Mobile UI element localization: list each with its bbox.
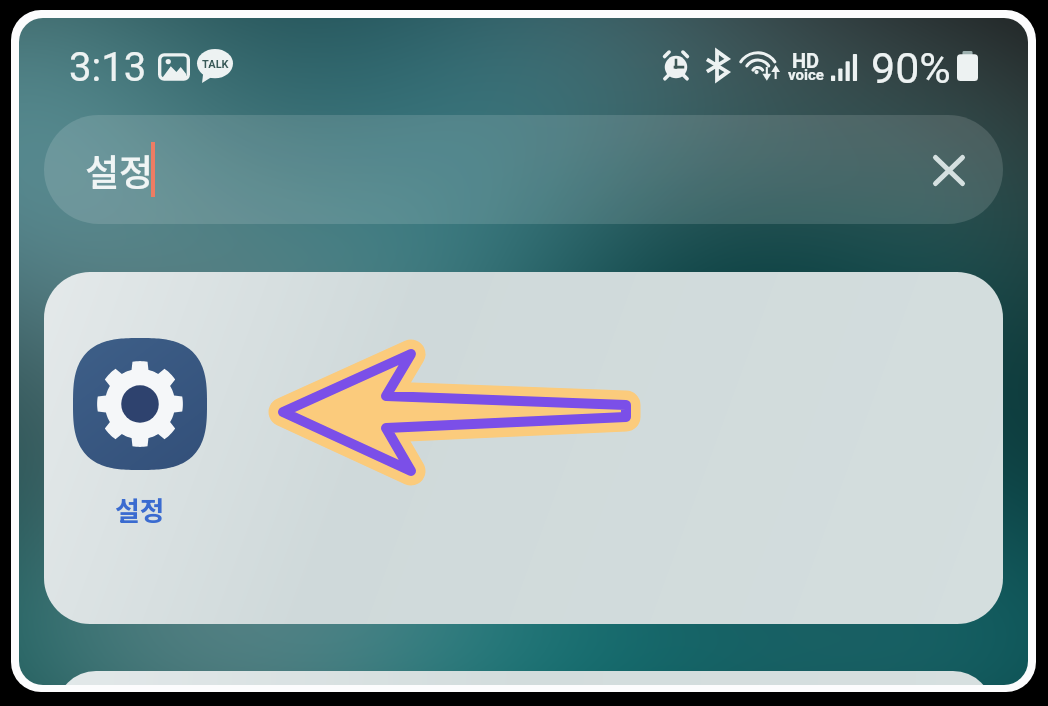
staticText: voice (788, 66, 824, 84)
button[interactable]: 설정 (44, 115, 1003, 224)
staticText: 설정 (115, 490, 165, 529)
staticText: 90% (871, 43, 951, 93)
button[interactable]: Clear search (910, 131, 988, 209)
staticText: TALK (202, 58, 229, 71)
button[interactable] (56, 671, 993, 685)
staticText: HD (792, 49, 820, 72)
staticText: 3:13 (69, 44, 147, 91)
button[interactable]: 설정 앱 열기 (73, 338, 207, 529)
staticText: 설정 (85, 143, 154, 197)
